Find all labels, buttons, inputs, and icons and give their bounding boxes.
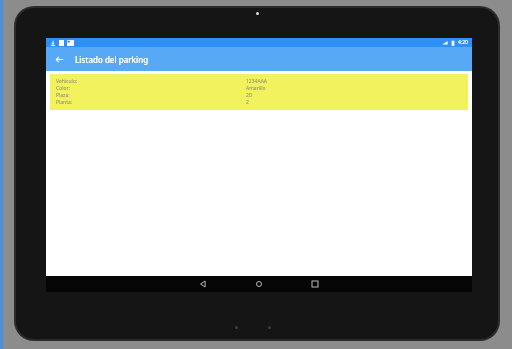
staticText: Amarillo [246, 85, 266, 92]
staticText: Color: [56, 85, 246, 92]
staticText: 4:20 [458, 39, 468, 46]
staticText: Vehiculo: [56, 78, 246, 85]
staticText: 2 [246, 99, 249, 106]
staticText: Listado del parking [75, 54, 149, 65]
button[interactable]: Vehiculo: [50, 74, 468, 110]
button[interactable]: Back [51, 51, 67, 67]
button[interactable]: Home [245, 276, 273, 292]
staticText: Planta: [56, 99, 246, 106]
staticText: 2D [246, 92, 253, 99]
button[interactable]: Back [189, 276, 217, 292]
staticText: 1234AAA [246, 78, 268, 85]
staticText: Plaza: [56, 92, 246, 99]
button[interactable]: Recent apps [301, 276, 329, 292]
